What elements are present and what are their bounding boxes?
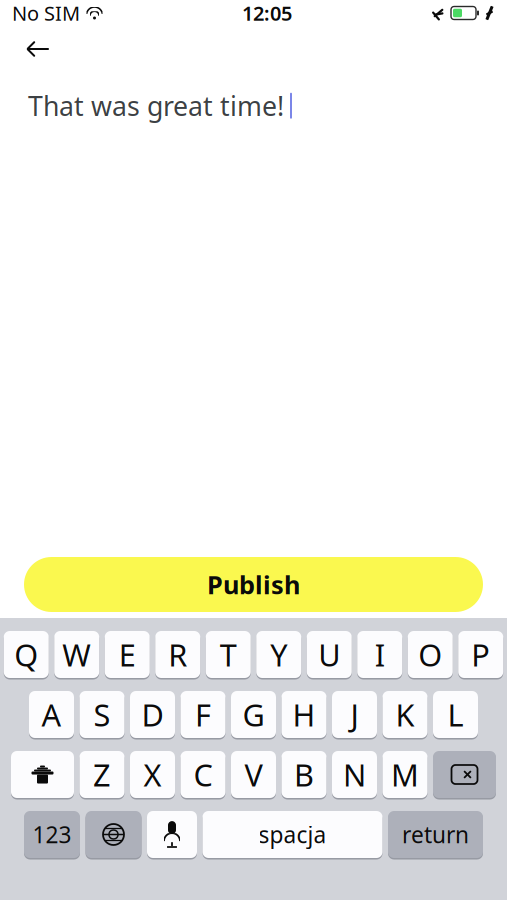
- staticText: O: [418, 634, 442, 675]
- button[interactable]: R: [155, 630, 200, 679]
- staticText: D: [141, 694, 163, 735]
- button[interactable]: 123: [24, 810, 80, 859]
- button[interactable]: I: [357, 630, 402, 679]
- staticText: Q: [14, 634, 38, 675]
- button[interactable]: K: [382, 690, 427, 739]
- button[interactable]: J: [332, 690, 377, 739]
- button[interactable]: H: [281, 690, 326, 739]
- staticText: K: [395, 694, 414, 735]
- button[interactable]: X: [130, 750, 175, 799]
- button[interactable]: U: [307, 630, 352, 679]
- staticText: Publish: [207, 568, 300, 601]
- staticText: spacja: [258, 819, 326, 849]
- staticText: E: [119, 634, 136, 675]
- button[interactable]: Delete: [433, 750, 496, 799]
- staticText: C: [193, 754, 212, 795]
- staticText: A: [41, 694, 61, 735]
- staticText: N: [343, 754, 366, 795]
- staticText: H: [292, 694, 315, 735]
- staticText: X: [143, 754, 161, 795]
- staticText: P: [471, 634, 490, 675]
- staticText: S: [93, 694, 110, 735]
- staticText: J: [350, 694, 358, 735]
- staticText: B: [294, 754, 314, 795]
- staticText: F: [195, 694, 211, 735]
- staticText: 12:05: [242, 0, 292, 26]
- staticText: Y: [270, 634, 287, 675]
- staticText: W: [62, 634, 91, 675]
- staticText: U: [318, 634, 340, 675]
- button[interactable]: B: [281, 750, 326, 799]
- staticText: R: [168, 634, 187, 675]
- button[interactable]: Publish: [24, 557, 483, 612]
- button[interactable]: A: [29, 690, 74, 739]
- staticText: return: [402, 819, 469, 849]
- button[interactable]: Q: [4, 630, 49, 679]
- button[interactable]: V: [231, 750, 276, 799]
- button[interactable]: M: [382, 750, 427, 799]
- button[interactable]: F: [180, 690, 225, 739]
- button[interactable]: Z: [79, 750, 124, 799]
- button[interactable]: return: [388, 810, 483, 859]
- staticText: V: [244, 754, 262, 795]
- staticText: M: [391, 754, 419, 795]
- staticText: 123: [32, 819, 71, 849]
- button[interactable]: G: [231, 690, 276, 739]
- button[interactable]: Y: [256, 630, 301, 679]
- button[interactable]: T: [206, 630, 251, 679]
- button[interactable]: E: [105, 630, 150, 679]
- staticText: No SIM: [12, 0, 80, 26]
- button[interactable]: L: [433, 690, 478, 739]
- staticText: I: [375, 634, 385, 675]
- staticText: G: [242, 694, 264, 735]
- button[interactable]: Back: [16, 27, 60, 71]
- button[interactable]: Shift: [11, 750, 74, 799]
- button[interactable]: S: [79, 690, 124, 739]
- button[interactable]: O: [408, 630, 453, 679]
- button[interactable]: spacja: [202, 810, 382, 859]
- staticText: L: [447, 694, 463, 735]
- staticText: Z: [93, 754, 111, 795]
- button[interactable]: Dictation: [147, 810, 197, 859]
- staticText: That was great time!: [28, 88, 284, 123]
- staticText: T: [220, 634, 237, 675]
- button[interactable]: C: [180, 750, 225, 799]
- button[interactable]: Next keyboard: [85, 810, 141, 859]
- button[interactable]: W: [54, 630, 99, 679]
- button[interactable]: P: [458, 630, 503, 679]
- button[interactable]: D: [130, 690, 175, 739]
- button[interactable]: N: [332, 750, 377, 799]
